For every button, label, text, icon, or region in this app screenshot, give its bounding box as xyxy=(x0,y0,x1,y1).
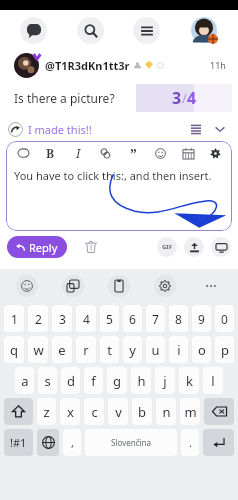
button[interactable]: Menu xyxy=(133,17,160,44)
button[interactable]: 7 xyxy=(146,305,165,332)
button[interactable]: y xyxy=(123,336,142,363)
button[interactable]: z xyxy=(37,398,56,425)
staticText: h xyxy=(137,372,146,390)
staticText: / xyxy=(182,89,187,107)
button[interactable]: 4 xyxy=(76,305,96,332)
button[interactable]: x xyxy=(60,398,80,425)
button[interactable]: p xyxy=(215,336,234,363)
button[interactable]: Change language xyxy=(37,429,59,456)
button[interactable]: Screen xyxy=(211,237,231,257)
button[interactable]: Add GIF xyxy=(157,237,177,257)
button[interactable]: Collapse xyxy=(212,121,228,137)
button[interactable]: Quote xyxy=(123,143,143,163)
button[interactable]: Messages xyxy=(20,17,47,44)
button[interactable]: s xyxy=(38,367,57,394)
staticText: , xyxy=(71,435,74,450)
button[interactable]: Upload file xyxy=(184,237,204,257)
staticText: Slovenčina xyxy=(111,437,151,448)
staticText: ” xyxy=(130,144,137,163)
button[interactable]: 6 xyxy=(123,305,142,332)
button[interactable]: Enter xyxy=(203,429,234,456)
staticText: n xyxy=(162,403,171,421)
staticText: q xyxy=(10,341,18,359)
staticText: B xyxy=(46,145,55,161)
staticText: y xyxy=(129,341,136,359)
button[interactable]: g xyxy=(107,367,127,394)
staticText: c xyxy=(91,403,98,421)
button[interactable]: Clipboard xyxy=(108,275,130,297)
button[interactable]: b xyxy=(132,398,152,425)
button[interactable]: d xyxy=(61,367,80,394)
button[interactable]: 8 xyxy=(169,305,188,332)
button[interactable]: More options xyxy=(200,275,222,297)
staticText: I made this!! xyxy=(28,122,92,137)
staticText: g xyxy=(113,372,121,390)
staticText: l xyxy=(211,372,215,390)
button[interactable]: e xyxy=(52,336,72,363)
staticText: 9 xyxy=(198,311,205,327)
button[interactable]: a xyxy=(15,367,34,394)
staticText: You have to click this:, and then insert… xyxy=(14,168,212,183)
button[interactable]: Emoji xyxy=(16,275,38,297)
button[interactable]: Emoji xyxy=(150,143,170,163)
button[interactable]: j xyxy=(155,367,175,394)
staticText: t xyxy=(107,341,112,359)
button[interactable]: u xyxy=(146,336,165,363)
button[interactable]: 3 xyxy=(136,84,232,112)
button[interactable]: v xyxy=(108,398,128,425)
staticText: p xyxy=(221,341,229,359)
button[interactable]: h xyxy=(131,367,151,394)
staticText: r xyxy=(83,341,89,359)
button[interactable]: Comment xyxy=(13,143,33,163)
button[interactable]: Link xyxy=(95,143,115,163)
staticText: 11h xyxy=(210,59,226,71)
button[interactable]: Italic xyxy=(68,143,88,163)
button[interactable]: m xyxy=(180,398,200,425)
staticText: 7 xyxy=(152,311,159,327)
staticText: s xyxy=(44,372,51,390)
button[interactable]: 5 xyxy=(100,305,119,332)
button[interactable]: n xyxy=(156,398,176,425)
button[interactable]: c xyxy=(84,398,104,425)
button[interactable]: Options xyxy=(188,121,204,137)
button[interactable]: , xyxy=(63,429,81,456)
button[interactable]: Reply xyxy=(7,236,67,258)
button[interactable]: 1 xyxy=(4,305,24,332)
button[interactable]: 0 xyxy=(215,305,234,332)
button[interactable]: Profile xyxy=(190,16,218,44)
button[interactable]: r xyxy=(76,336,96,363)
button[interactable]: 2 xyxy=(28,305,48,332)
button[interactable]: f xyxy=(84,367,103,394)
staticText: 4 xyxy=(83,311,90,327)
staticText: e xyxy=(58,341,66,359)
staticText: v xyxy=(115,403,122,421)
button[interactable]: Search xyxy=(77,17,104,44)
button[interactable]: i xyxy=(169,336,188,363)
button[interactable]: Shift xyxy=(4,398,33,425)
button[interactable]: t xyxy=(100,336,119,363)
button[interactable]: Keyboard settings xyxy=(154,275,176,297)
button[interactable]: Bold xyxy=(40,143,60,163)
button[interactable]: o xyxy=(192,336,211,363)
button[interactable]: Stickers xyxy=(62,275,84,297)
button[interactable]: 9 xyxy=(192,305,211,332)
staticText: i xyxy=(177,341,181,359)
button[interactable]: Symbols xyxy=(4,429,33,456)
staticText: m xyxy=(184,403,197,421)
button[interactable]: Settings xyxy=(205,143,225,163)
button[interactable]: Space xyxy=(85,429,177,456)
staticText: f xyxy=(91,372,96,390)
button[interactable]: q xyxy=(4,336,24,363)
button[interactable]: . xyxy=(181,429,199,456)
button[interactable]: Replying to xyxy=(8,122,23,137)
button[interactable]: w xyxy=(28,336,48,363)
button[interactable]: Calendar xyxy=(178,143,198,163)
button[interactable]: 3 xyxy=(52,305,72,332)
staticText: x xyxy=(67,403,74,421)
button[interactable]: l xyxy=(203,367,223,394)
staticText: 8 xyxy=(175,311,182,327)
button[interactable]: Delete xyxy=(81,237,101,257)
button[interactable]: Backspace xyxy=(204,398,234,425)
button[interactable]: k xyxy=(179,367,199,394)
staticText: 1 xyxy=(11,311,18,327)
